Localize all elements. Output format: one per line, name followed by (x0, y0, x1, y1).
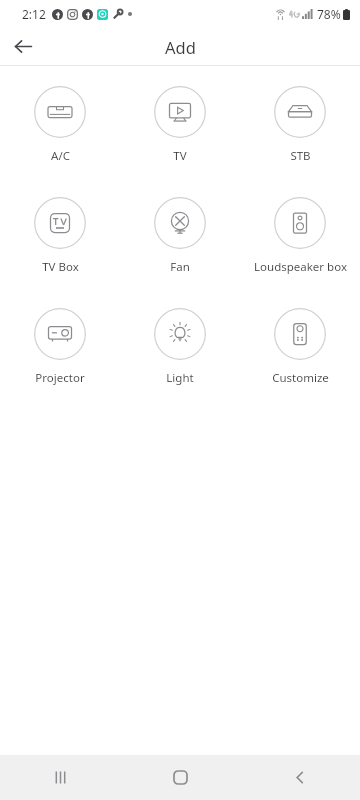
button[interactable]: Customize (240, 306, 360, 388)
staticText: Loudspeaker box (254, 259, 347, 275)
button[interactable]: Fan (120, 195, 240, 277)
staticText: Light (166, 370, 194, 386)
staticText: Fan (170, 259, 190, 275)
staticText: TV Box (42, 259, 79, 275)
button[interactable]: Projector (0, 306, 120, 388)
button[interactable]: Back (3, 28, 43, 65)
button[interactable]: Loudspeaker box (240, 195, 360, 277)
button[interactable]: TV (120, 84, 240, 166)
staticText: Customize (272, 370, 329, 386)
button[interactable]: STB (240, 84, 360, 166)
button[interactable]: Home (120, 755, 240, 800)
button[interactable]: TV Box (0, 195, 120, 277)
button[interactable]: A/C (0, 84, 120, 166)
staticText: 78% (317, 6, 341, 22)
staticText: A/C (51, 148, 70, 164)
staticText: STB (290, 148, 311, 164)
staticText: TV (173, 148, 187, 164)
button[interactable]: Light (120, 306, 240, 388)
button[interactable]: Back (240, 755, 360, 800)
staticText: Add (165, 36, 196, 58)
button[interactable]: Recent apps (0, 755, 120, 800)
staticText: Projector (35, 370, 85, 386)
staticText: 2:12 (22, 6, 46, 22)
